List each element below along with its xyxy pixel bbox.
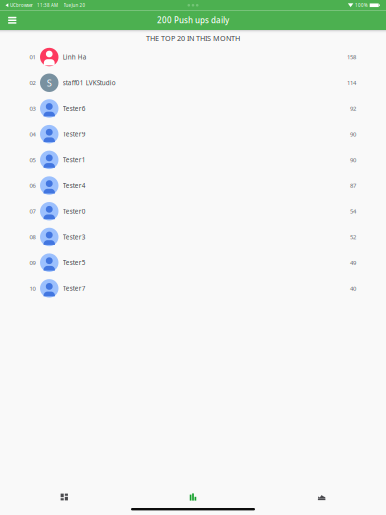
staticText: S: [47, 76, 52, 89]
staticText: 03: [29, 104, 35, 112]
button[interactable]: 07: [0, 198, 386, 224]
staticText: 40: [350, 284, 356, 292]
staticText: staff01 LVKStudio: [63, 78, 116, 87]
staticText: 02: [29, 79, 35, 87]
staticText: 04: [29, 130, 35, 138]
staticText: 06: [29, 182, 35, 190]
staticText: Linh Ha: [63, 53, 87, 61]
staticText: Tester1: [63, 155, 86, 164]
button[interactable]: 02: [0, 70, 386, 96]
button[interactable]: 01: [0, 44, 386, 70]
staticText: 100%: [355, 2, 368, 8]
staticText: Tester7: [63, 284, 86, 293]
staticText: 49: [350, 259, 356, 267]
staticText: 05: [29, 156, 35, 164]
staticText: 90: [350, 156, 356, 164]
staticText: 10: [29, 284, 35, 292]
staticText: 200 Push ups daily: [157, 15, 229, 26]
staticText: 92: [350, 104, 356, 112]
staticText: 87: [350, 182, 356, 190]
button[interactable]: 09: [0, 250, 386, 275]
staticText: 52: [350, 233, 356, 241]
staticText: THE TOP 20 IN THIS MONTH: [146, 33, 240, 43]
staticText: Tester5: [63, 258, 86, 267]
staticText: Tue Jun 20: [63, 2, 85, 8]
staticText: Tester4: [63, 181, 86, 190]
staticText: Tester9: [63, 130, 86, 138]
staticText: Tester3: [63, 233, 86, 241]
button[interactable]: 04: [0, 121, 386, 147]
staticText: 09: [29, 259, 35, 267]
staticText: 01: [29, 53, 35, 61]
staticText: Tester0: [63, 207, 86, 215]
button[interactable]: Statistics: [129, 486, 257, 508]
button[interactable]: 05: [0, 147, 386, 173]
staticText: 08: [29, 233, 35, 241]
staticText: Tester6: [63, 104, 86, 113]
button[interactable]: Dashboard: [0, 486, 129, 508]
staticText: 158: [347, 53, 356, 61]
staticText: 90: [350, 130, 356, 138]
button[interactable]: Menu: [2, 10, 22, 30]
staticText: 54: [350, 207, 356, 215]
staticText: 07: [29, 207, 35, 215]
staticText: 11:38 AM: [37, 2, 58, 8]
staticText: 114: [347, 79, 356, 87]
button[interactable]: 03: [0, 96, 386, 121]
button[interactable]: Activity: [257, 486, 386, 508]
staticText: UCbrowser: [10, 2, 33, 8]
button[interactable]: 08: [0, 224, 386, 250]
button[interactable]: 06: [0, 173, 386, 198]
button[interactable]: 10: [0, 275, 386, 301]
